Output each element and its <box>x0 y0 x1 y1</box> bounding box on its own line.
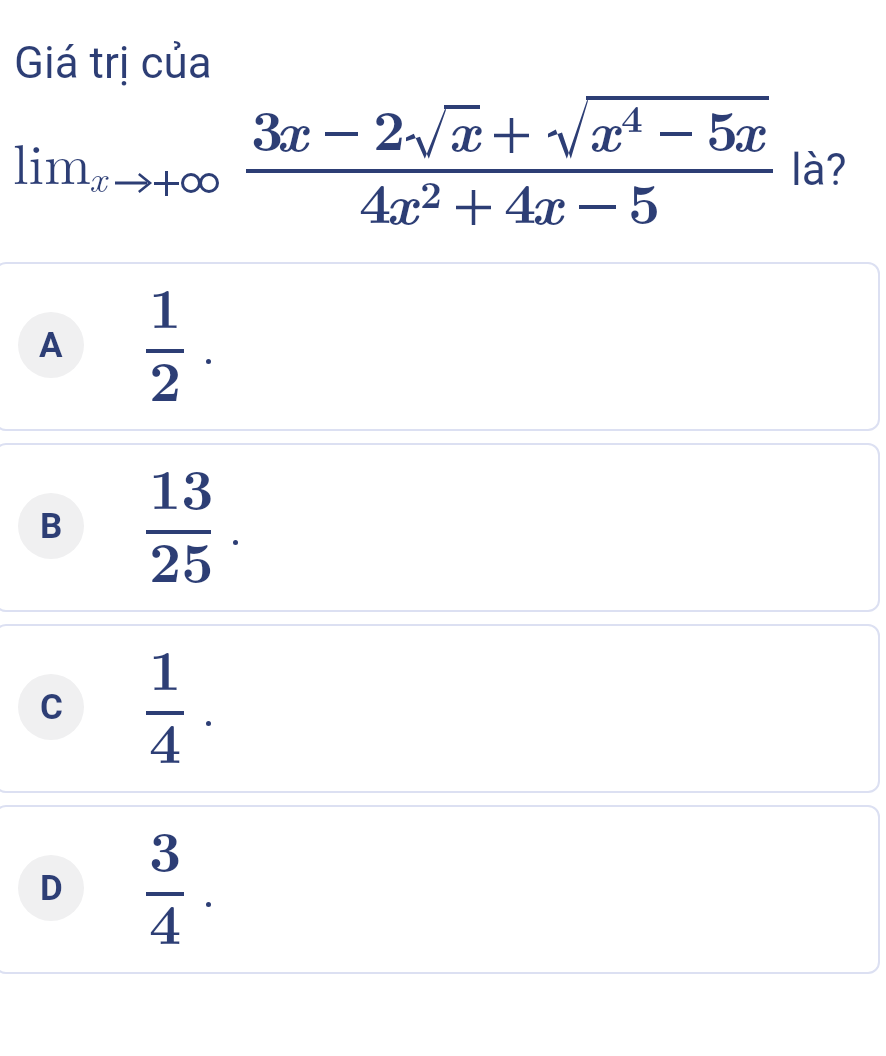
staticText: 25 <box>149 519 214 599</box>
button[interactable]: Đáp án B: 13 phần 25 <box>0 443 880 612</box>
staticText: 1 <box>149 265 182 345</box>
staticText: 3 <box>149 808 182 888</box>
staticText: lim <box>13 121 91 200</box>
staticText: B <box>40 506 63 547</box>
staticText: C <box>40 687 63 728</box>
staticText: 5 <box>628 160 661 240</box>
staticText: x <box>732 87 764 168</box>
button[interactable]: Đáp án D: 3 phần 4 <box>0 805 880 974</box>
staticText: x <box>448 87 480 168</box>
staticText: là? <box>791 144 847 196</box>
staticText: 4 <box>149 881 182 961</box>
staticText: 13 <box>149 446 214 526</box>
staticText: x <box>276 87 308 168</box>
staticText: D <box>40 868 63 909</box>
button[interactable]: Đáp án C: 1 phần 4 <box>0 624 880 793</box>
staticText: x <box>89 149 107 203</box>
staticText: 4 <box>359 160 392 240</box>
staticText: 2 <box>149 338 182 418</box>
staticText: 1 <box>149 627 182 707</box>
button[interactable]: Đáp án A: 1 phần 2 <box>0 262 880 431</box>
staticText: 4 <box>621 89 643 143</box>
staticText: A <box>39 325 63 366</box>
staticText: 4 <box>504 160 537 240</box>
staticText: 3 <box>251 87 284 167</box>
staticText: 5 <box>706 87 739 167</box>
staticText: x <box>531 160 563 241</box>
staticText: x <box>386 160 418 241</box>
staticText: 2 <box>420 165 442 219</box>
staticText: Giá trị của <box>14 37 212 89</box>
staticText: x <box>588 87 620 168</box>
staticText: 4 <box>149 700 182 780</box>
staticText: 2 <box>373 87 406 167</box>
